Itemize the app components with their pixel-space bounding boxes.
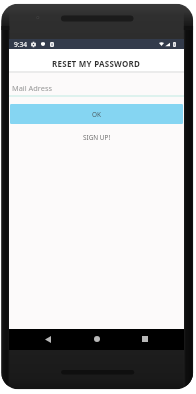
button[interactable]: Home [84, 329, 109, 350]
button[interactable]: Recent apps [132, 329, 157, 350]
button[interactable]: SIGN UP! [9, 130, 184, 144]
staticText: Mail Adress [12, 83, 53, 93]
button[interactable]: Mail Adress [9, 83, 184, 97]
staticText: 9:34 [14, 40, 28, 49]
staticText: RESET MY PASSWORD [52, 58, 141, 69]
staticText: OK [92, 110, 101, 119]
button[interactable]: OK [10, 104, 183, 124]
button[interactable]: Back [35, 329, 60, 350]
staticText: SIGN UP! [83, 133, 111, 142]
